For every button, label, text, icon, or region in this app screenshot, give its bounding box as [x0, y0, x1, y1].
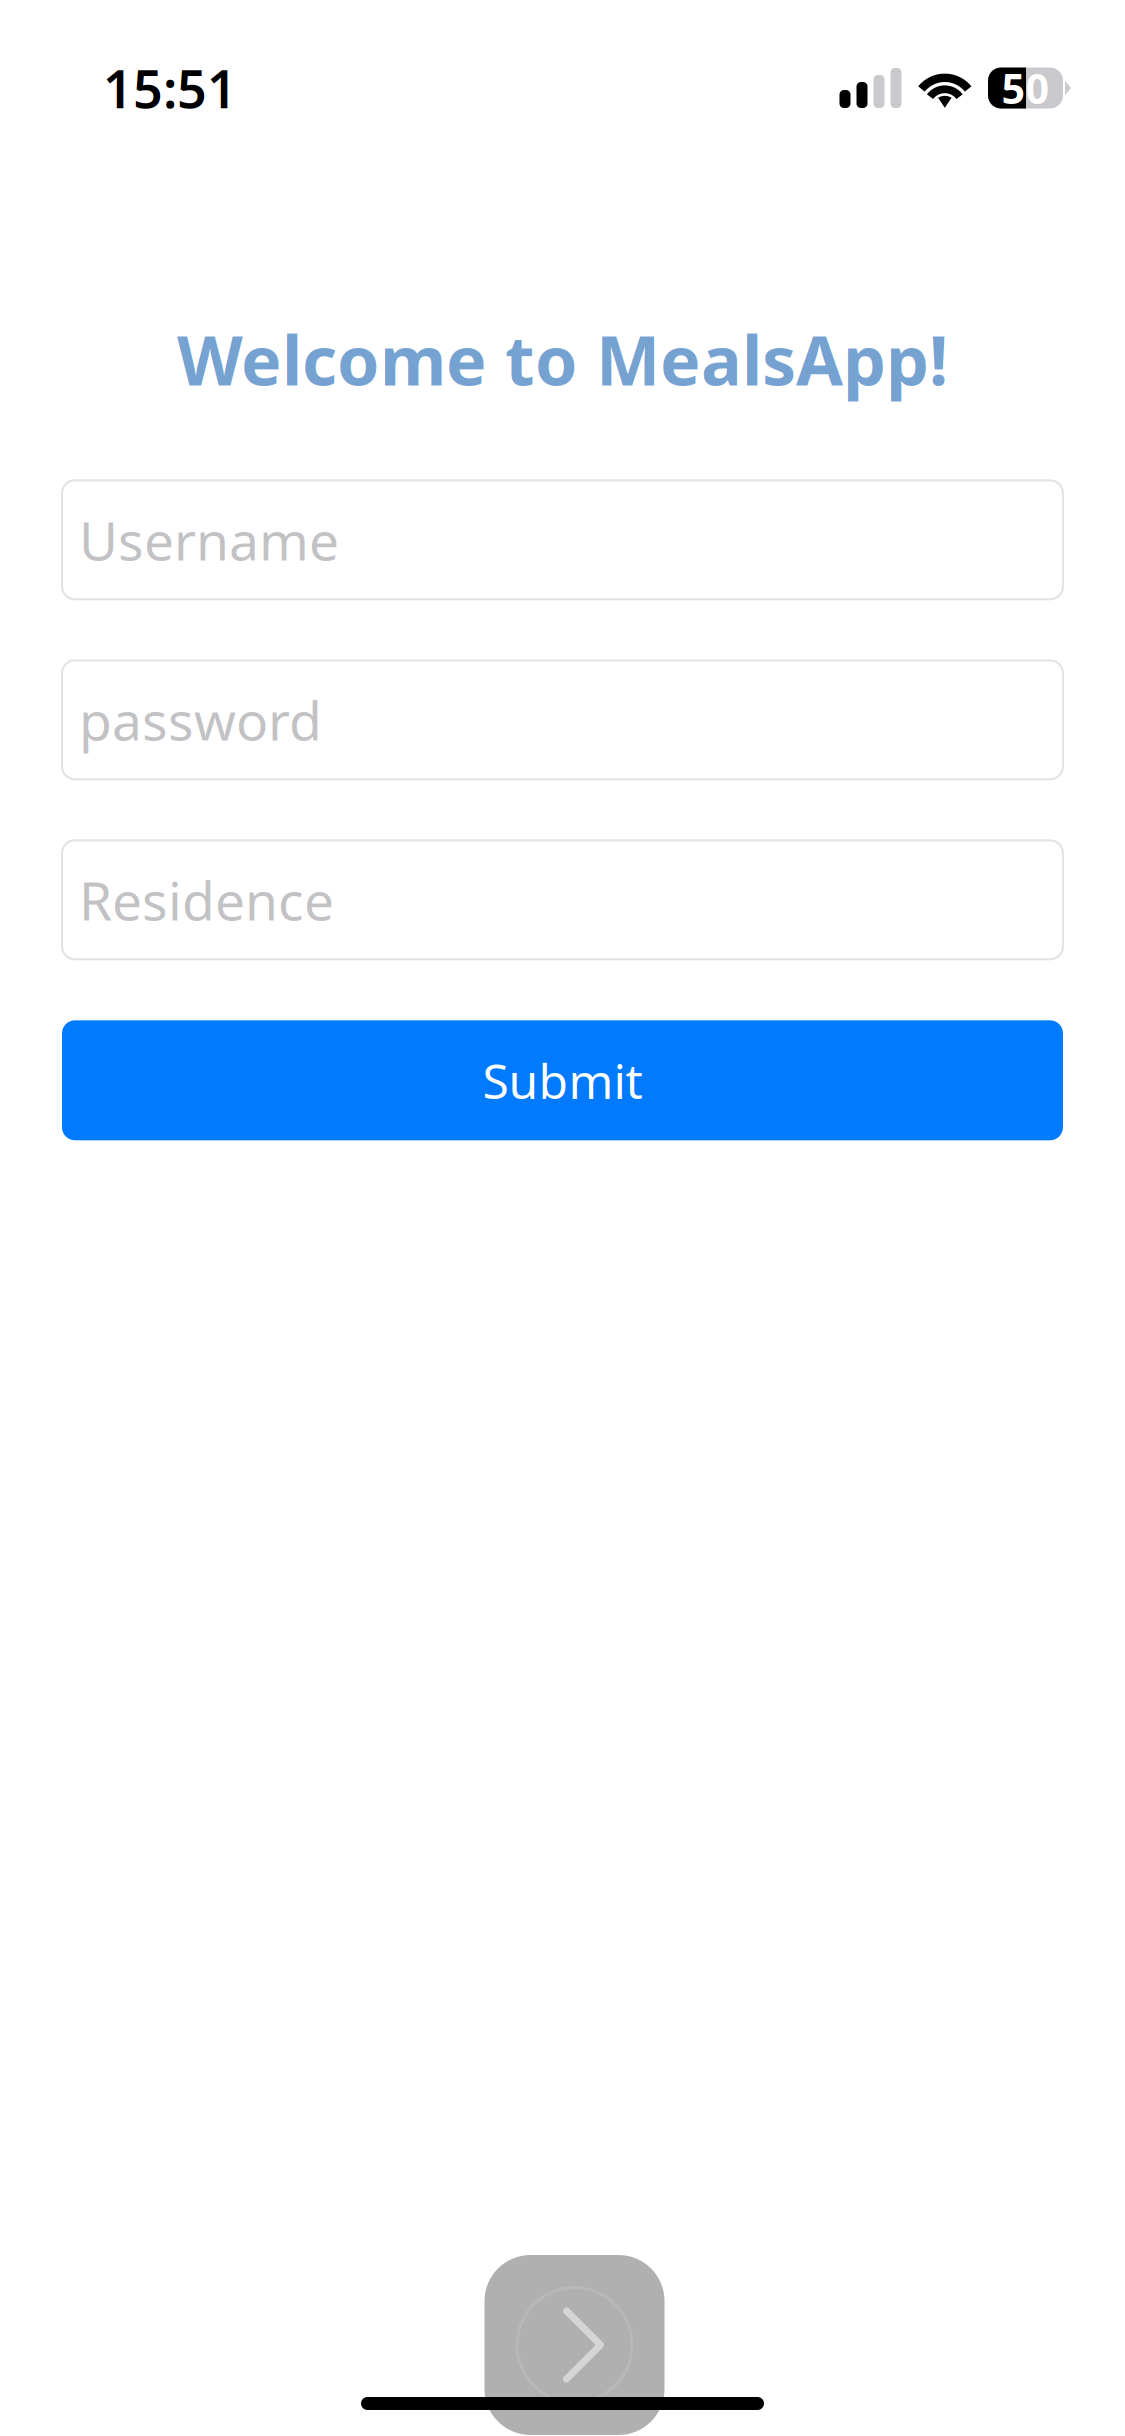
- staticText: Username: [79, 504, 339, 575]
- staticText: password: [79, 684, 322, 755]
- button[interactable]: password: [62, 660, 1063, 779]
- staticText: Residence: [79, 864, 334, 935]
- button[interactable]: Submit: [62, 1020, 1063, 1140]
- staticText: 15:51: [103, 53, 237, 123]
- staticText: Welcome to MealsApp!: [177, 314, 948, 404]
- button[interactable]: Residence: [62, 840, 1063, 959]
- button[interactable]: Next: [484, 2255, 664, 2435]
- button[interactable]: Username: [62, 480, 1063, 599]
- staticText: Submit: [482, 1048, 642, 1112]
- staticText: 50: [1001, 61, 1049, 115]
